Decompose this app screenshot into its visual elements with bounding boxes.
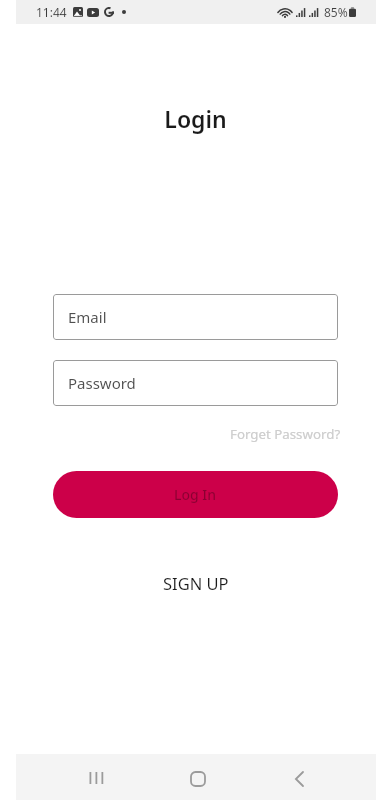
staticText: Password <box>68 373 136 393</box>
button[interactable]: Home <box>174 756 222 800</box>
button[interactable]: Recent apps <box>71 755 119 800</box>
staticText: Login <box>0 103 391 134</box>
staticText: 11:44 <box>36 4 67 20</box>
button[interactable]: SIGN UP <box>157 566 235 600</box>
staticText: Email <box>68 307 107 327</box>
button[interactable]: Password <box>53 360 338 406</box>
button[interactable]: Forget Password? <box>224 419 347 449</box>
staticText: 85% <box>324 4 348 20</box>
staticText: Forget Password? <box>230 425 341 443</box>
staticText: Log In <box>174 485 217 504</box>
staticText: SIGN UP <box>163 572 229 594</box>
button[interactable]: Back <box>275 756 323 800</box>
button[interactable]: Log In <box>53 471 338 518</box>
button[interactable]: Email <box>53 294 338 340</box>
